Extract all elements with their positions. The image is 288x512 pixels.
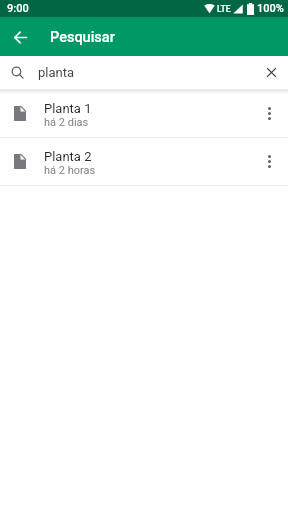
button[interactable]: More options	[250, 90, 288, 137]
button[interactable]: Planta 1	[0, 90, 288, 137]
staticText: 100%	[257, 2, 284, 15]
staticText: Planta 2	[44, 149, 92, 164]
staticText: Pesquisar	[50, 29, 115, 46]
staticText: LTE	[217, 4, 231, 14]
button[interactable]: Back	[7, 24, 33, 50]
button[interactable]: More options	[250, 138, 288, 185]
staticText: planta	[38, 65, 254, 80]
button[interactable]: Clear search	[254, 56, 288, 89]
staticText: há 2 dias	[44, 116, 89, 129]
staticText: há 2 horas	[44, 164, 96, 177]
staticText: Planta 1	[44, 101, 92, 116]
staticText: 9:00	[7, 2, 29, 15]
button[interactable]: Planta 2	[0, 138, 288, 185]
